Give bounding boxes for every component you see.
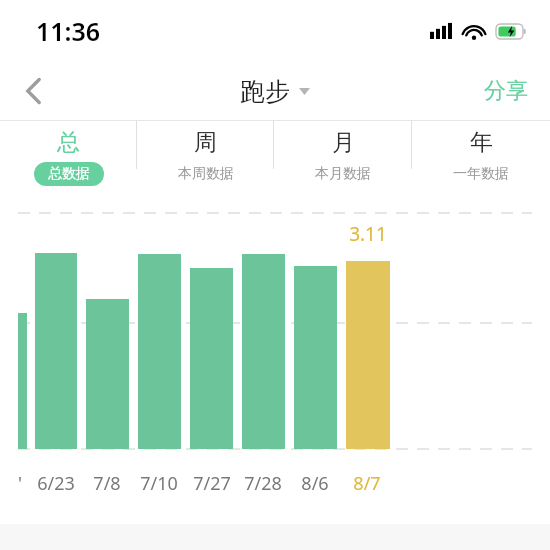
- staticText: 本月数据: [315, 165, 371, 183]
- staticText: 6/23: [30, 471, 82, 496]
- button[interactable]: 月: [274, 121, 412, 193]
- staticText: 7/27: [186, 471, 238, 496]
- staticText: 3.11: [347, 221, 389, 247]
- button[interactable]: 周: [137, 121, 274, 193]
- staticText: ': [18, 471, 23, 496]
- staticText: 月: [332, 128, 355, 157]
- staticText: 跑步: [240, 76, 290, 107]
- staticText: 周: [194, 128, 217, 157]
- staticText: 7/8: [81, 471, 133, 496]
- button[interactable]: 分享: [462, 62, 550, 120]
- staticText: 8/6: [289, 471, 341, 496]
- staticText: 总数据: [48, 165, 90, 183]
- staticText: 年: [470, 128, 493, 157]
- staticText: 分享: [484, 77, 528, 105]
- button[interactable]: 年: [412, 121, 550, 193]
- button[interactable]: 总: [0, 121, 137, 193]
- button[interactable]: 跑步: [240, 76, 310, 107]
- staticText: 7/28: [237, 471, 289, 496]
- staticText: 总: [57, 128, 80, 157]
- staticText: 一年数据: [453, 165, 509, 183]
- staticText: 本周数据: [178, 165, 234, 183]
- staticText: 7/10: [133, 471, 185, 496]
- staticText: 8/7: [341, 471, 393, 496]
- staticText: 11:36: [36, 14, 101, 48]
- button[interactable]: Back: [0, 62, 66, 120]
